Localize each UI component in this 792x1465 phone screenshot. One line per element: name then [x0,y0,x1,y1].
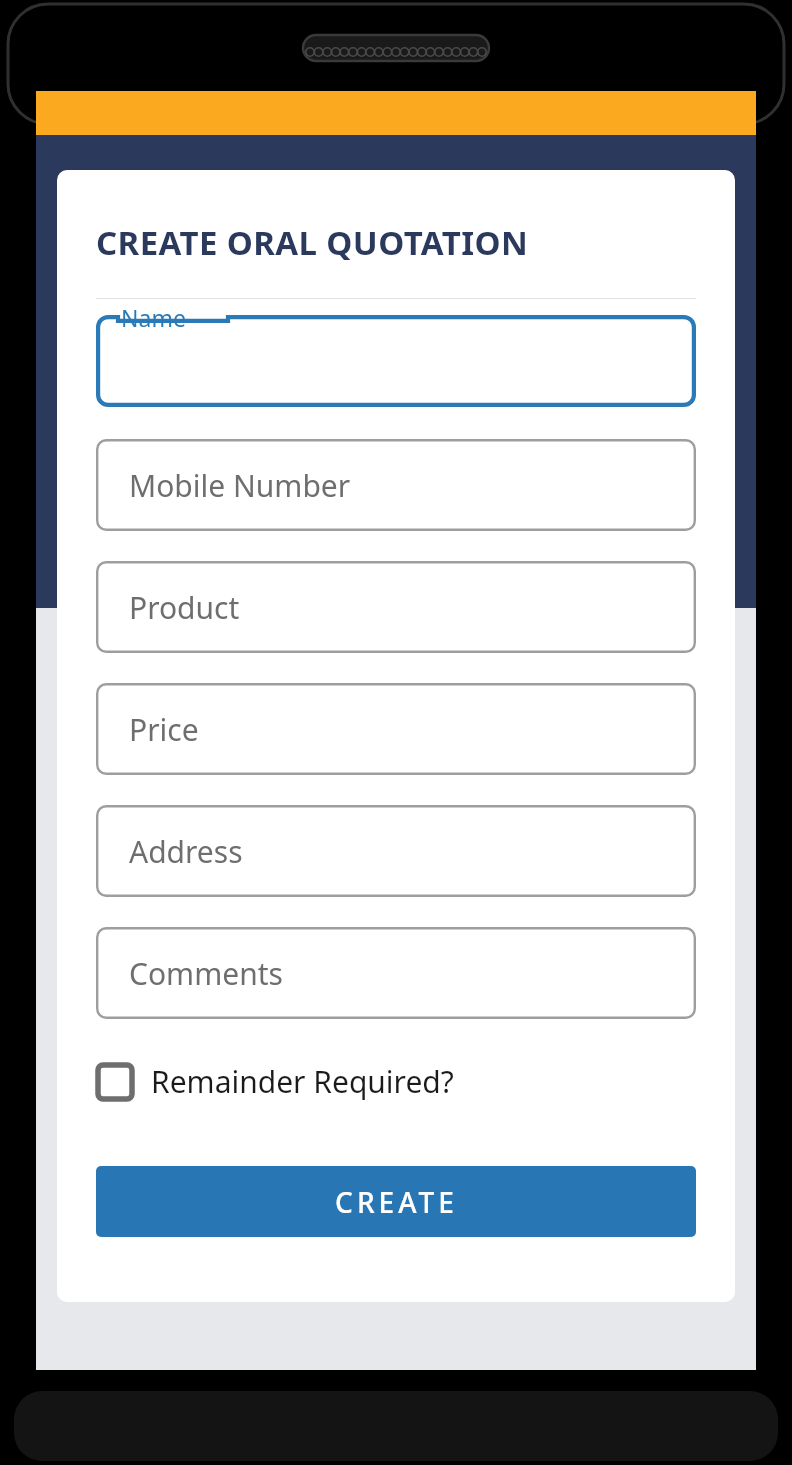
staticText: CREATE [335,1183,458,1221]
staticText: Mobile Number [129,465,351,506]
staticText: Address [129,831,243,872]
button[interactable]: Name [96,315,696,407]
button[interactable]: Product [96,561,696,653]
button[interactable]: CREATE [96,1166,696,1237]
button[interactable]: Remainder Required? [96,1061,454,1102]
staticText: Comments [129,953,283,994]
staticText: Remainder Required? [151,1061,454,1102]
staticText: Product [129,587,240,628]
button[interactable]: Address [96,805,696,897]
staticText: Name [121,302,186,333]
button[interactable]: Comments [96,927,696,1019]
staticText: Price [129,709,199,750]
button[interactable]: Price [96,683,696,775]
button[interactable]: Mobile Number [96,439,696,531]
staticText: CREATE ORAL QUOTATION [96,220,529,265]
